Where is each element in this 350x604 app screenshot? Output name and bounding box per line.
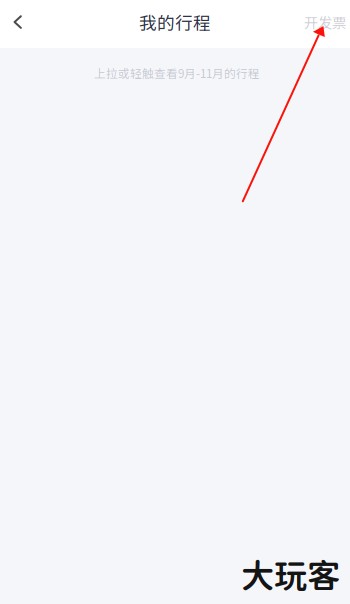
staticText: 上拉或轻触查看9月-11月的行程 [94,65,260,81]
staticText: 我的行程 [139,9,211,35]
staticText: 大玩客 [241,556,340,595]
button[interactable]: Back [0,0,36,44]
staticText: 开发票 [304,12,346,32]
button[interactable]: 开发票 [300,0,350,44]
